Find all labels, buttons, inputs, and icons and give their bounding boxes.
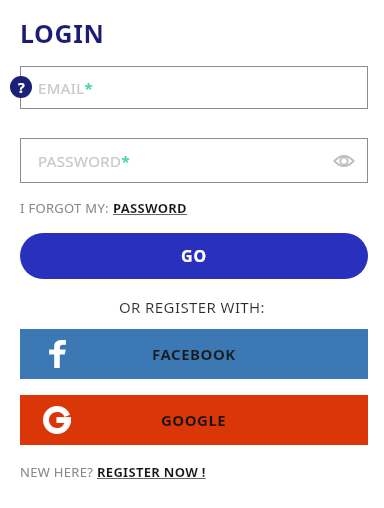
staticText: ?	[18, 78, 25, 97]
staticText: GOOGLE	[161, 410, 227, 430]
staticText: LOGIN	[20, 16, 105, 50]
staticText: REGISTER NOW !	[97, 463, 206, 481]
staticText: PASSWORD	[113, 199, 187, 217]
button[interactable]: FACEBOOK	[20, 329, 368, 379]
button[interactable]: Help about email	[10, 76, 32, 98]
button[interactable]: GO	[20, 233, 368, 279]
staticText: I FORGOT MY:	[20, 199, 113, 217]
button[interactable]: EMAIL*	[20, 66, 368, 109]
staticText: FACEBOOK	[152, 344, 236, 364]
staticText: EMAIL*	[38, 78, 94, 98]
staticText: GO	[181, 245, 207, 267]
staticText: PASSWORD*	[38, 151, 130, 171]
staticText: OR REGISTER WITH:	[0, 297, 384, 317]
button[interactable]: I FORGOT MY:	[20, 199, 187, 217]
button[interactable]: Show password	[326, 143, 362, 179]
button[interactable]: PASSWORD*	[20, 138, 368, 183]
staticText: NEW HERE?	[20, 463, 97, 481]
button[interactable]: GOOGLE	[20, 395, 368, 445]
button[interactable]: NEW HERE?	[20, 463, 206, 481]
